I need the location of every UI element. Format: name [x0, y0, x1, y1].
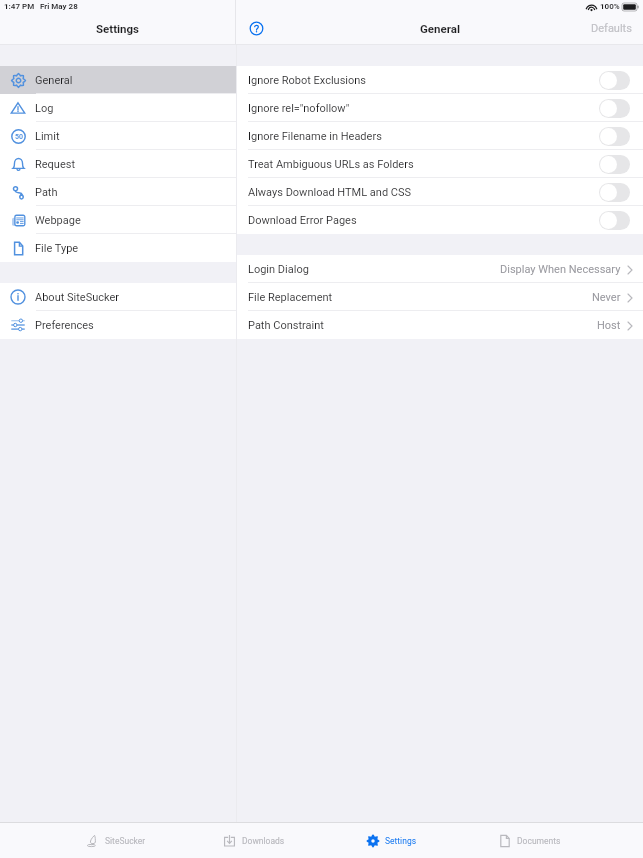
- staticText: General: [35, 74, 73, 87]
- staticText: Ignore rel="nofollow": [248, 102, 350, 115]
- button[interactable]: Toggle: [599, 127, 630, 146]
- button[interactable]: Toggle: [599, 71, 630, 90]
- staticText: Webpage: [35, 214, 81, 227]
- button[interactable]: SiteSucker: [46, 823, 184, 858]
- button[interactable]: Settings: [322, 823, 460, 858]
- staticText: Settings: [385, 836, 417, 846]
- button[interactable]: File Type: [0, 234, 236, 262]
- staticText: Ignore Filename in Headers: [248, 130, 382, 143]
- button[interactable]: Help: [244, 16, 268, 40]
- staticText: Log: [35, 102, 54, 115]
- staticText: Downloads: [242, 836, 285, 846]
- button[interactable]: Ignore rel="nofollow": [237, 94, 643, 122]
- button[interactable]: Path Constraint: [237, 311, 643, 339]
- staticText: 1:47 PM: [4, 2, 35, 11]
- button[interactable]: Path: [0, 178, 236, 206]
- staticText: 50: [15, 133, 23, 141]
- button[interactable]: Treat Ambiguous URLs as Folders: [237, 150, 643, 178]
- staticText: Limit: [35, 130, 60, 143]
- staticText: 100%: [600, 2, 620, 11]
- staticText: About SiteSucker: [35, 291, 120, 304]
- button[interactable]: Downloads: [184, 823, 322, 858]
- button[interactable]: General: [0, 66, 236, 94]
- staticText: Fri May 28: [40, 2, 78, 11]
- staticText: Settings: [96, 22, 140, 35]
- staticText: Request: [35, 158, 76, 171]
- button[interactable]: Login Dialog: [237, 255, 643, 283]
- button[interactable]: Always Download HTML and CSS: [237, 178, 643, 206]
- button[interactable]: About SiteSucker: [0, 283, 236, 311]
- button[interactable]: Ignore Robot Exclusions: [237, 66, 643, 94]
- staticText: Path Constraint: [248, 319, 324, 332]
- button[interactable]: Request: [0, 150, 236, 178]
- staticText: Ignore Robot Exclusions: [248, 74, 367, 87]
- staticText: SiteSucker: [105, 836, 146, 846]
- staticText: Preferences: [35, 319, 94, 332]
- button[interactable]: Preferences: [0, 311, 236, 339]
- staticText: File Type: [35, 242, 79, 255]
- button[interactable]: Toggle: [599, 211, 630, 230]
- staticText: Always Download HTML and CSS: [248, 186, 412, 199]
- staticText: Defaults: [591, 22, 632, 35]
- staticText: Login Dialog: [248, 263, 309, 276]
- button[interactable]: Webpage: [0, 206, 236, 234]
- button[interactable]: Toggle: [599, 99, 630, 118]
- staticText: General: [420, 22, 460, 35]
- staticText: Treat Ambiguous URLs as Folders: [248, 158, 414, 171]
- staticText: File Replacement: [248, 291, 333, 304]
- staticText: Never: [592, 291, 621, 304]
- staticText: Documents: [517, 836, 561, 846]
- button[interactable]: Toggle: [599, 155, 630, 174]
- button[interactable]: Log: [0, 94, 236, 122]
- button[interactable]: Toggle: [599, 183, 630, 202]
- button[interactable]: Defaults: [585, 18, 638, 39]
- staticText: Host: [597, 319, 621, 332]
- staticText: Download Error Pages: [248, 214, 357, 227]
- staticText: Display When Necessary: [500, 263, 621, 276]
- button[interactable]: Download Error Pages: [237, 206, 643, 234]
- button[interactable]: File Replacement: [237, 283, 643, 311]
- button[interactable]: Ignore Filename in Headers: [237, 122, 643, 150]
- button[interactable]: Documents: [460, 823, 598, 858]
- staticText: Path: [35, 186, 58, 199]
- button[interactable]: 50: [0, 122, 236, 150]
